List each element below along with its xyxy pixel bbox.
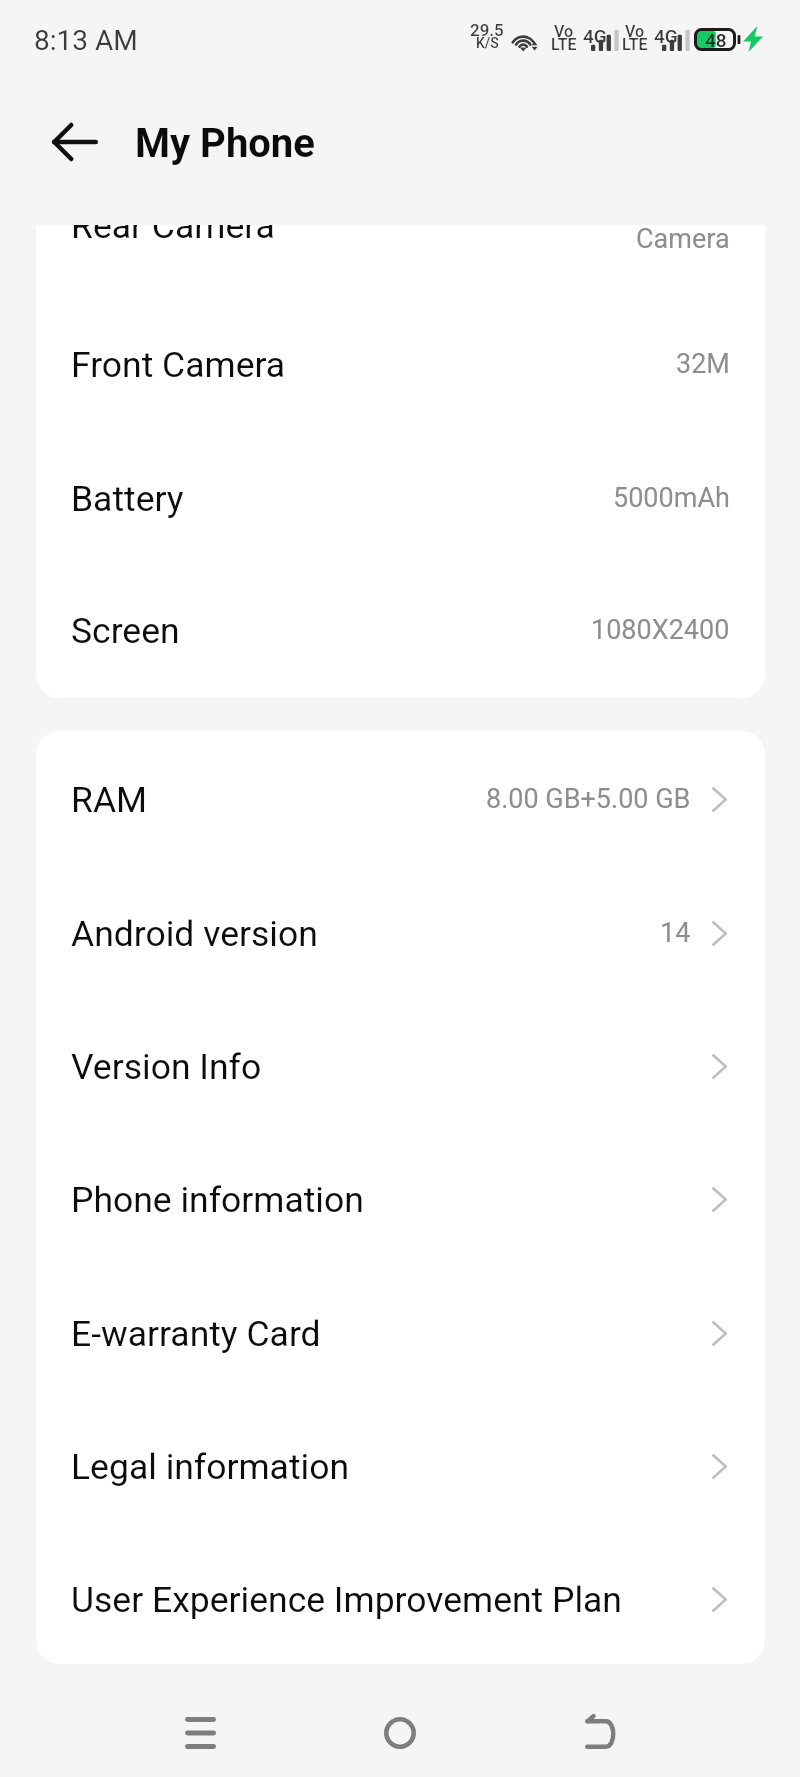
staticText: User Experience Improvement Plan	[71, 1579, 622, 1621]
button[interactable]: E-warranty Card	[36, 1267, 765, 1401]
button[interactable]: Back	[534, 1688, 666, 1777]
button[interactable]: Version Info	[36, 1000, 765, 1134]
staticText: LTE	[622, 35, 648, 54]
staticText: Battery	[71, 478, 184, 520]
button[interactable]: Recent apps	[134, 1688, 266, 1777]
staticText: 29.5	[470, 20, 504, 40]
button[interactable]: Battery	[36, 432, 765, 566]
button[interactable]: RAM	[36, 733, 765, 867]
staticText: Vo	[625, 22, 645, 41]
staticText: 1080X2400	[591, 614, 730, 646]
staticText: 5000mAh	[613, 482, 730, 514]
staticText: RAM	[71, 779, 148, 821]
button[interactable]: Back	[37, 104, 113, 180]
staticText: Rear Camera	[71, 225, 275, 247]
staticText: Android version	[71, 913, 318, 955]
button[interactable]: Rear Camera	[36, 225, 765, 293]
button[interactable]: Screen	[36, 564, 765, 698]
staticText: 32M	[676, 348, 730, 380]
staticText: Legal information	[71, 1446, 350, 1488]
button[interactable]: Android version	[36, 867, 765, 1001]
button[interactable]: Phone information	[36, 1133, 765, 1267]
button[interactable]: Home	[334, 1688, 466, 1777]
staticText: 8:13 AM	[34, 24, 138, 57]
staticText: Vo	[554, 22, 574, 41]
staticText: K/S	[476, 35, 499, 51]
staticText: LTE	[551, 35, 577, 54]
staticText: 4G	[583, 25, 607, 47]
staticText: Version Info	[71, 1046, 262, 1088]
button[interactable]: User Experience Improvement Plan	[36, 1533, 765, 1664]
staticText: 14	[660, 917, 691, 949]
staticText: 4G	[654, 25, 678, 47]
button[interactable]: Legal information	[36, 1400, 765, 1534]
staticText: E-warranty Card	[71, 1313, 321, 1355]
staticText: Camera	[636, 225, 730, 255]
staticText: My Phone	[135, 120, 315, 167]
button[interactable]: Front Camera	[36, 298, 765, 432]
staticText: Front Camera	[71, 344, 286, 386]
staticText: 48	[705, 29, 727, 51]
staticText: 8.00 GB+5.00 GB	[486, 783, 691, 815]
staticText: Screen	[71, 610, 180, 652]
staticText: Phone information	[71, 1179, 364, 1221]
